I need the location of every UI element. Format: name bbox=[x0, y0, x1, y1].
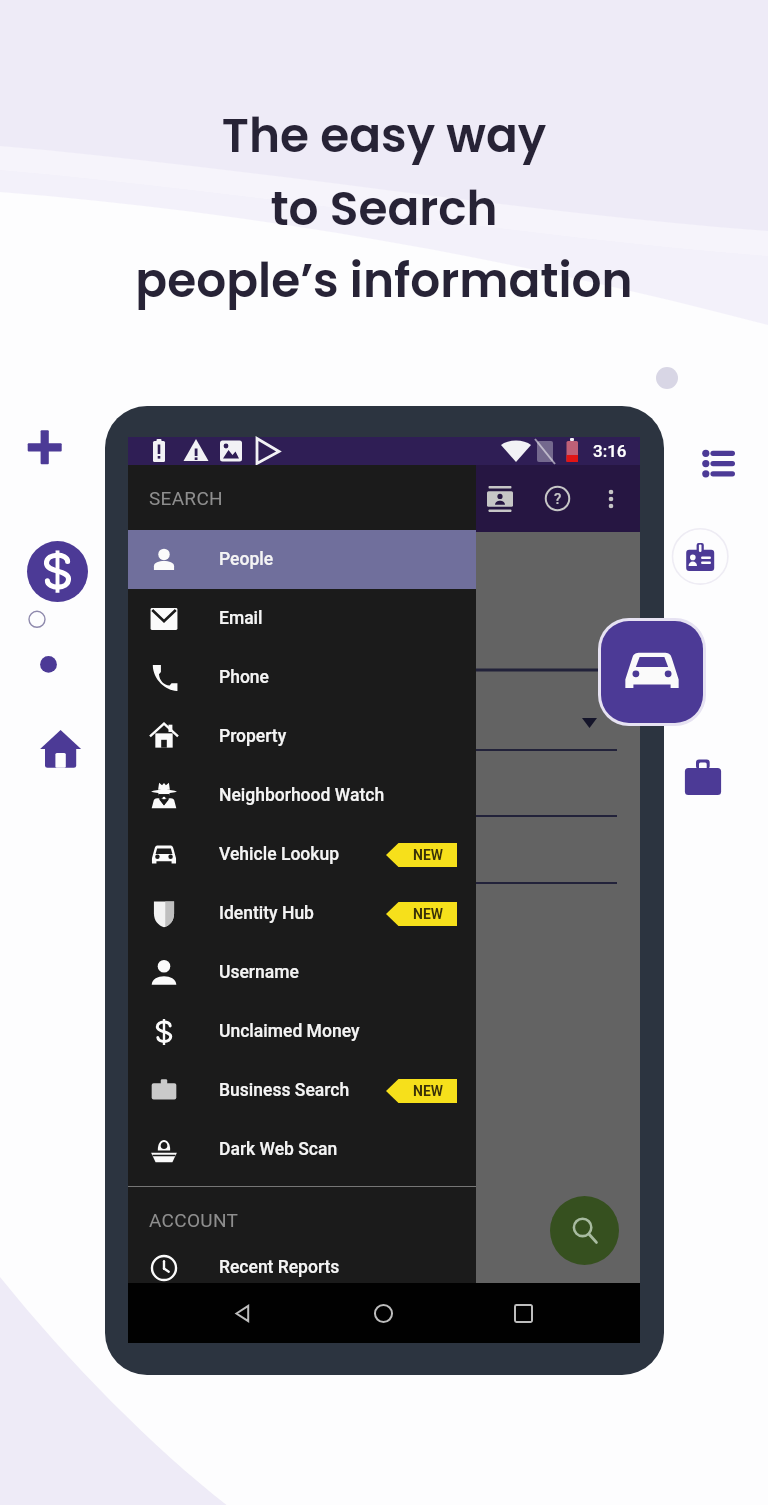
button[interactable]: Neighborhood Watch bbox=[128, 766, 476, 825]
staticText: Username bbox=[219, 962, 299, 983]
staticText: ? bbox=[554, 490, 562, 508]
staticText: Neighborhood Watch bbox=[219, 785, 385, 806]
staticText: Unclaimed Money bbox=[219, 1021, 360, 1042]
staticText: Recent Reports bbox=[219, 1257, 340, 1278]
staticText: The easy way to Search people’s informat… bbox=[0, 103, 768, 314]
button[interactable]: Vehicle lookup bbox=[601, 621, 703, 723]
staticText: Property bbox=[219, 726, 287, 747]
button[interactable]: Email bbox=[128, 589, 476, 648]
button[interactable]: Dark Web Scan bbox=[128, 1120, 476, 1179]
staticText: Dark Web Scan bbox=[219, 1139, 338, 1160]
staticText: NEW bbox=[413, 1083, 444, 1099]
button[interactable]: People bbox=[128, 530, 476, 589]
button[interactable]: Help bbox=[534, 475, 581, 522]
staticText: 3:16 bbox=[593, 441, 627, 461]
staticText: Vehicle Lookup bbox=[219, 844, 340, 865]
button[interactable]: Profile card bbox=[476, 475, 523, 522]
button[interactable]: Unclaimed Money bbox=[128, 1002, 476, 1061]
staticText: Identity Hub bbox=[219, 903, 314, 924]
button[interactable]: Back bbox=[217, 1288, 267, 1338]
staticText: Business Search bbox=[219, 1080, 350, 1101]
button[interactable]: More options bbox=[587, 475, 634, 522]
staticText: People bbox=[219, 549, 274, 570]
button[interactable]: Search bbox=[550, 1196, 619, 1265]
button[interactable]: Vehicle Lookup bbox=[128, 825, 476, 884]
button[interactable]: Business Search bbox=[128, 1061, 476, 1120]
button[interactable]: Phone bbox=[128, 648, 476, 707]
staticText: ACCOUNT bbox=[149, 1209, 239, 1231]
button[interactable]: Username bbox=[128, 943, 476, 1002]
button[interactable]: Recent apps bbox=[498, 1288, 548, 1338]
button[interactable]: Identity Hub bbox=[128, 884, 476, 943]
button[interactable]: Home bbox=[358, 1288, 408, 1338]
button[interactable]: Property bbox=[128, 707, 476, 766]
staticText: NEW bbox=[413, 906, 444, 922]
staticText: NEW bbox=[413, 847, 444, 863]
staticText: SEARCH bbox=[149, 487, 223, 509]
button[interactable]: Recent Reports bbox=[128, 1252, 476, 1283]
staticText: Phone bbox=[219, 667, 269, 688]
staticText: Email bbox=[219, 608, 263, 629]
